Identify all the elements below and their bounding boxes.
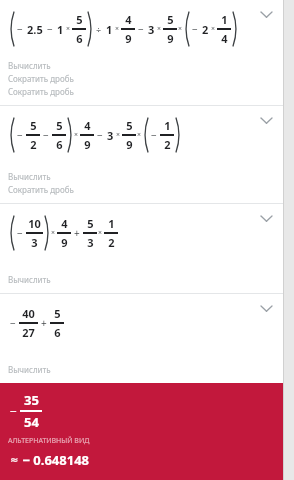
button[interactable]: Вычислить bbox=[8, 364, 51, 375]
staticText: 10 bbox=[28, 216, 41, 231]
staticText: 5 bbox=[54, 306, 61, 321]
staticText: − bbox=[17, 226, 23, 240]
staticText: − bbox=[138, 22, 144, 36]
button[interactable]: − bbox=[0, 106, 283, 203]
staticText: 35 bbox=[24, 391, 39, 409]
button[interactable]: Expand bbox=[255, 109, 277, 131]
staticText: 5 bbox=[76, 12, 83, 27]
staticText: 4 bbox=[221, 31, 228, 46]
staticText: − bbox=[151, 128, 157, 142]
staticText: − bbox=[43, 128, 49, 142]
staticText: × bbox=[66, 24, 71, 34]
staticText: 1 bbox=[106, 22, 113, 37]
staticText: 4 bbox=[61, 216, 68, 231]
staticText: 5 bbox=[87, 216, 94, 231]
button[interactable]: Expand bbox=[255, 3, 277, 25]
staticText: 27 bbox=[22, 325, 35, 340]
button[interactable]: Вычислить bbox=[8, 60, 51, 71]
button[interactable]: − bbox=[0, 383, 283, 480]
button[interactable]: Expand bbox=[255, 207, 277, 229]
staticText: 3 bbox=[31, 235, 38, 250]
staticText: Вычислить bbox=[8, 274, 51, 285]
staticText: × bbox=[211, 24, 216, 34]
staticText: 1 bbox=[57, 22, 64, 37]
staticText: 1 bbox=[108, 216, 115, 231]
staticText: Сократить дробь bbox=[8, 86, 74, 97]
staticText: 2 bbox=[108, 235, 115, 250]
staticText: 54 bbox=[24, 413, 39, 431]
staticText: 5 bbox=[56, 118, 63, 133]
staticText: 5 bbox=[30, 118, 37, 133]
staticText: 5 bbox=[167, 12, 174, 27]
staticText: АЛЬТЕРНАТИВНЫЙ ВИД bbox=[8, 436, 90, 446]
button[interactable]: Сократить дробь bbox=[8, 184, 74, 195]
staticText: 9 bbox=[84, 137, 91, 152]
staticText: × bbox=[137, 130, 142, 140]
staticText: − bbox=[10, 403, 17, 419]
staticText: − bbox=[47, 22, 53, 36]
staticText: Вычислить bbox=[8, 171, 51, 182]
staticText: − bbox=[192, 22, 198, 36]
staticText: 2 bbox=[30, 137, 37, 152]
staticText: × bbox=[74, 130, 79, 140]
staticText: − bbox=[10, 316, 16, 330]
staticText: − bbox=[17, 128, 23, 142]
staticText: 9 bbox=[125, 31, 132, 46]
staticText: 1 bbox=[164, 118, 171, 133]
staticText: 6 bbox=[56, 137, 63, 152]
staticText: × bbox=[116, 130, 121, 140]
staticText: 6 bbox=[54, 325, 61, 340]
button[interactable]: Expand bbox=[255, 297, 277, 319]
staticText: − bbox=[97, 128, 103, 142]
staticText: Вычислить bbox=[8, 364, 51, 375]
staticText: 4 bbox=[84, 118, 91, 133]
button[interactable]: Сократить дробь bbox=[8, 73, 74, 84]
staticText: 2 bbox=[202, 22, 209, 37]
staticText: 4 bbox=[125, 12, 132, 27]
staticText: Сократить дробь bbox=[8, 73, 74, 84]
button[interactable]: Вычислить bbox=[8, 171, 51, 182]
staticText: 9 bbox=[61, 235, 68, 250]
button[interactable]: − bbox=[0, 294, 283, 383]
staticText: + bbox=[41, 316, 47, 330]
staticText: 2 bbox=[164, 137, 171, 152]
staticText: × bbox=[157, 24, 162, 34]
staticText: 2.5 bbox=[27, 22, 43, 37]
staticText: ≈ bbox=[10, 454, 19, 466]
staticText: 5 bbox=[126, 118, 133, 133]
staticText: Вычислить bbox=[8, 60, 51, 71]
staticText: 6 bbox=[76, 31, 83, 46]
staticText: × bbox=[115, 24, 120, 34]
staticText: − 0.648148 bbox=[19, 451, 90, 469]
staticText: + bbox=[74, 226, 80, 240]
staticText: 3 bbox=[87, 235, 94, 250]
staticText: − bbox=[17, 22, 23, 36]
staticText: 9 bbox=[126, 137, 133, 152]
staticText: 1 bbox=[221, 12, 228, 27]
staticText: × bbox=[51, 228, 56, 238]
staticText: × bbox=[178, 24, 183, 34]
button[interactable]: − bbox=[0, 0, 283, 105]
staticText: Сократить дробь bbox=[8, 184, 74, 195]
button[interactable]: − bbox=[0, 204, 283, 293]
staticText: 9 bbox=[167, 31, 174, 46]
staticText: 3 bbox=[107, 128, 114, 143]
staticText: 40 bbox=[22, 306, 35, 321]
staticText: 3 bbox=[148, 22, 155, 37]
staticText: ÷ bbox=[96, 23, 102, 35]
button[interactable]: Вычислить bbox=[8, 274, 51, 285]
button[interactable]: Сократить дробь bbox=[8, 86, 74, 97]
staticText: × bbox=[98, 228, 103, 238]
